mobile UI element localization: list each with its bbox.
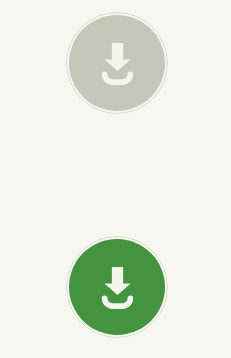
button[interactable]: Download (unavailable) [66, 12, 168, 114]
button[interactable]: Download [66, 236, 168, 338]
